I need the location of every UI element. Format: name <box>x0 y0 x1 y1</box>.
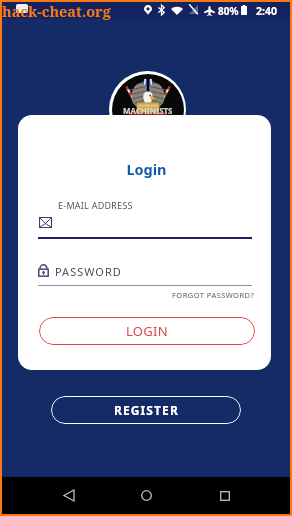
staticText: E-MAIL ADDRESS <box>58 199 133 211</box>
staticText: REGISTER <box>114 402 179 418</box>
staticText: PASSWORD <box>55 264 122 279</box>
button[interactable]: Recents <box>210 477 240 514</box>
button[interactable]: Back <box>54 477 84 514</box>
staticText: LOGIN <box>126 322 168 340</box>
staticText: 80% <box>218 4 239 18</box>
staticText: 2:40 <box>256 4 277 18</box>
staticText: hack-cheat.org <box>2 1 111 21</box>
button[interactable]: LOGIN <box>39 317 255 345</box>
staticText: MACHINISTS <box>123 105 173 116</box>
staticText: Login <box>20 159 271 179</box>
button[interactable]: E-mail address field <box>38 210 252 239</box>
button[interactable]: FORGOT PASSWORD? <box>172 290 255 300</box>
button[interactable]: Home <box>131 477 161 514</box>
button[interactable]: REGISTER <box>51 396 241 424</box>
button[interactable]: Password field <box>38 259 252 287</box>
